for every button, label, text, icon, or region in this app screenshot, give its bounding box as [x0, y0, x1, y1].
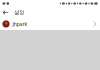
button[interactable]: jhpark [0, 18, 100, 30]
staticText: jhpark [13, 20, 28, 28]
button[interactable]: Back [0, 7, 11, 18]
staticText: 설정 [14, 9, 24, 16]
